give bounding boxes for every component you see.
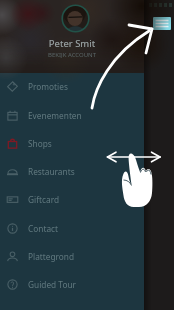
- button[interactable]: Restaurants: [0, 157, 144, 185]
- button[interactable]: Contact: [0, 214, 144, 242]
- button[interactable]: Promoties: [0, 72, 144, 100]
- staticText: Restaurants: [28, 166, 75, 177]
- staticText: Shops: [28, 138, 52, 149]
- button[interactable]: Plattegrond: [0, 242, 144, 270]
- staticText: Contact: [28, 223, 59, 234]
- button[interactable]: Evenementen: [0, 101, 144, 129]
- staticText: Evenementen: [28, 110, 82, 121]
- button[interactable]: Giftcard: [0, 185, 144, 213]
- staticText: Plattegrond: [28, 251, 75, 262]
- button[interactable]: Shops: [0, 129, 144, 157]
- button[interactable]: Open navigation menu: [153, 17, 171, 30]
- button[interactable]: Peter Smit: [0, 0, 144, 73]
- staticText: Peter Smit: [0, 37, 144, 50]
- button[interactable]: Guided Tour: [0, 270, 144, 298]
- staticText: Giftcard: [28, 194, 60, 205]
- staticText: BEKIJK ACCOUNT: [0, 51, 144, 59]
- staticText: Promoties: [28, 81, 68, 92]
- staticText: Guided Tour: [28, 279, 76, 290]
